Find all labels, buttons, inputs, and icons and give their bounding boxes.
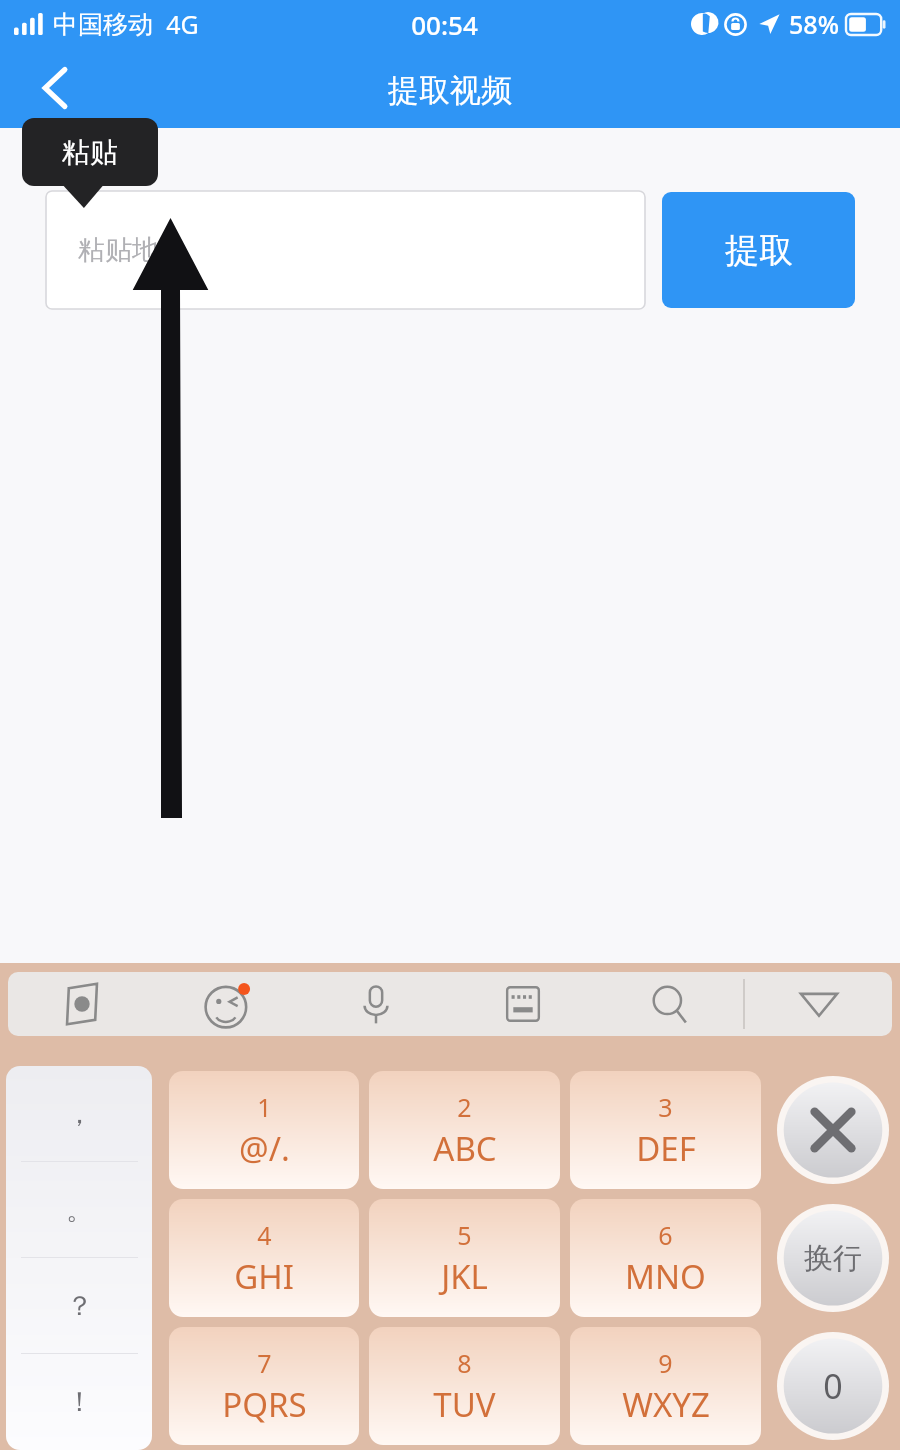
staticText: 2 [457,1090,472,1124]
staticText: 9 [658,1346,673,1380]
staticText: 粘贴 [62,135,118,170]
staticText: GHI [234,1254,294,1299]
button[interactable]: 7 [169,1327,359,1445]
staticText: 换行 [804,1240,862,1277]
button[interactable]: ！ [6,1354,152,1450]
button[interactable]: Hide keyboard [745,972,892,1036]
button[interactable]: 6 [570,1199,761,1317]
staticText: 8 [457,1346,472,1380]
button[interactable]: Back [18,48,92,128]
staticText: MNO [625,1254,706,1299]
staticText: 提取视频 [388,71,512,110]
staticText: 6 [658,1218,673,1252]
button[interactable]: 提取 [662,192,855,308]
button[interactable]: 粘贴地址 [46,191,645,309]
staticText: 4 [257,1218,272,1252]
staticText: ， [66,1097,93,1131]
staticText: TUV [433,1382,496,1427]
staticText: 5 [457,1218,472,1252]
staticText: 4G [166,7,199,41]
button[interactable]: 粘贴 [22,118,158,186]
staticText: DEF [636,1126,696,1171]
button[interactable]: ， [6,1066,152,1450]
staticText: 1 [257,1090,272,1124]
staticText: 7 [257,1346,272,1380]
staticText: 3 [658,1090,673,1124]
staticText: @/. [239,1126,290,1171]
staticText: 提取 [725,229,793,272]
button[interactable]: 2 [369,1071,560,1189]
staticText: 。 [66,1193,93,1227]
button[interactable]: ？ [6,1258,152,1354]
staticText: 粘贴地址 [78,233,186,267]
button[interactable]: 4 [169,1199,359,1317]
button[interactable]: 5 [369,1199,560,1317]
staticText: 0 [823,1363,843,1409]
staticText: WXYZ [622,1382,710,1427]
button[interactable]: 换行 [777,1204,889,1312]
button[interactable]: ， [6,1066,152,1162]
staticText: ！ [66,1385,93,1419]
button[interactable]: Search [596,972,743,1036]
button[interactable]: 。 [6,1162,152,1258]
staticText: PQRS [222,1382,307,1427]
staticText: 中国移动 [53,9,153,40]
button[interactable]: 1 [169,1071,359,1189]
staticText: 58% [789,7,839,41]
button[interactable]: 8 [369,1327,560,1445]
staticText: ？ [66,1289,93,1323]
staticText: JKL [441,1254,488,1299]
staticText: ABC [433,1126,497,1171]
staticText: 00:54 [411,7,478,42]
button[interactable]: Sogou input [8,972,155,1036]
button[interactable]: Voice input [302,972,449,1036]
button[interactable]: 9 [570,1327,761,1445]
button[interactable]: Delete [777,1076,889,1184]
button[interactable]: 3 [570,1071,761,1189]
button[interactable]: 0 [777,1332,889,1440]
button[interactable]: Keyboard layout [449,972,596,1036]
button[interactable]: Emoji [155,972,302,1036]
